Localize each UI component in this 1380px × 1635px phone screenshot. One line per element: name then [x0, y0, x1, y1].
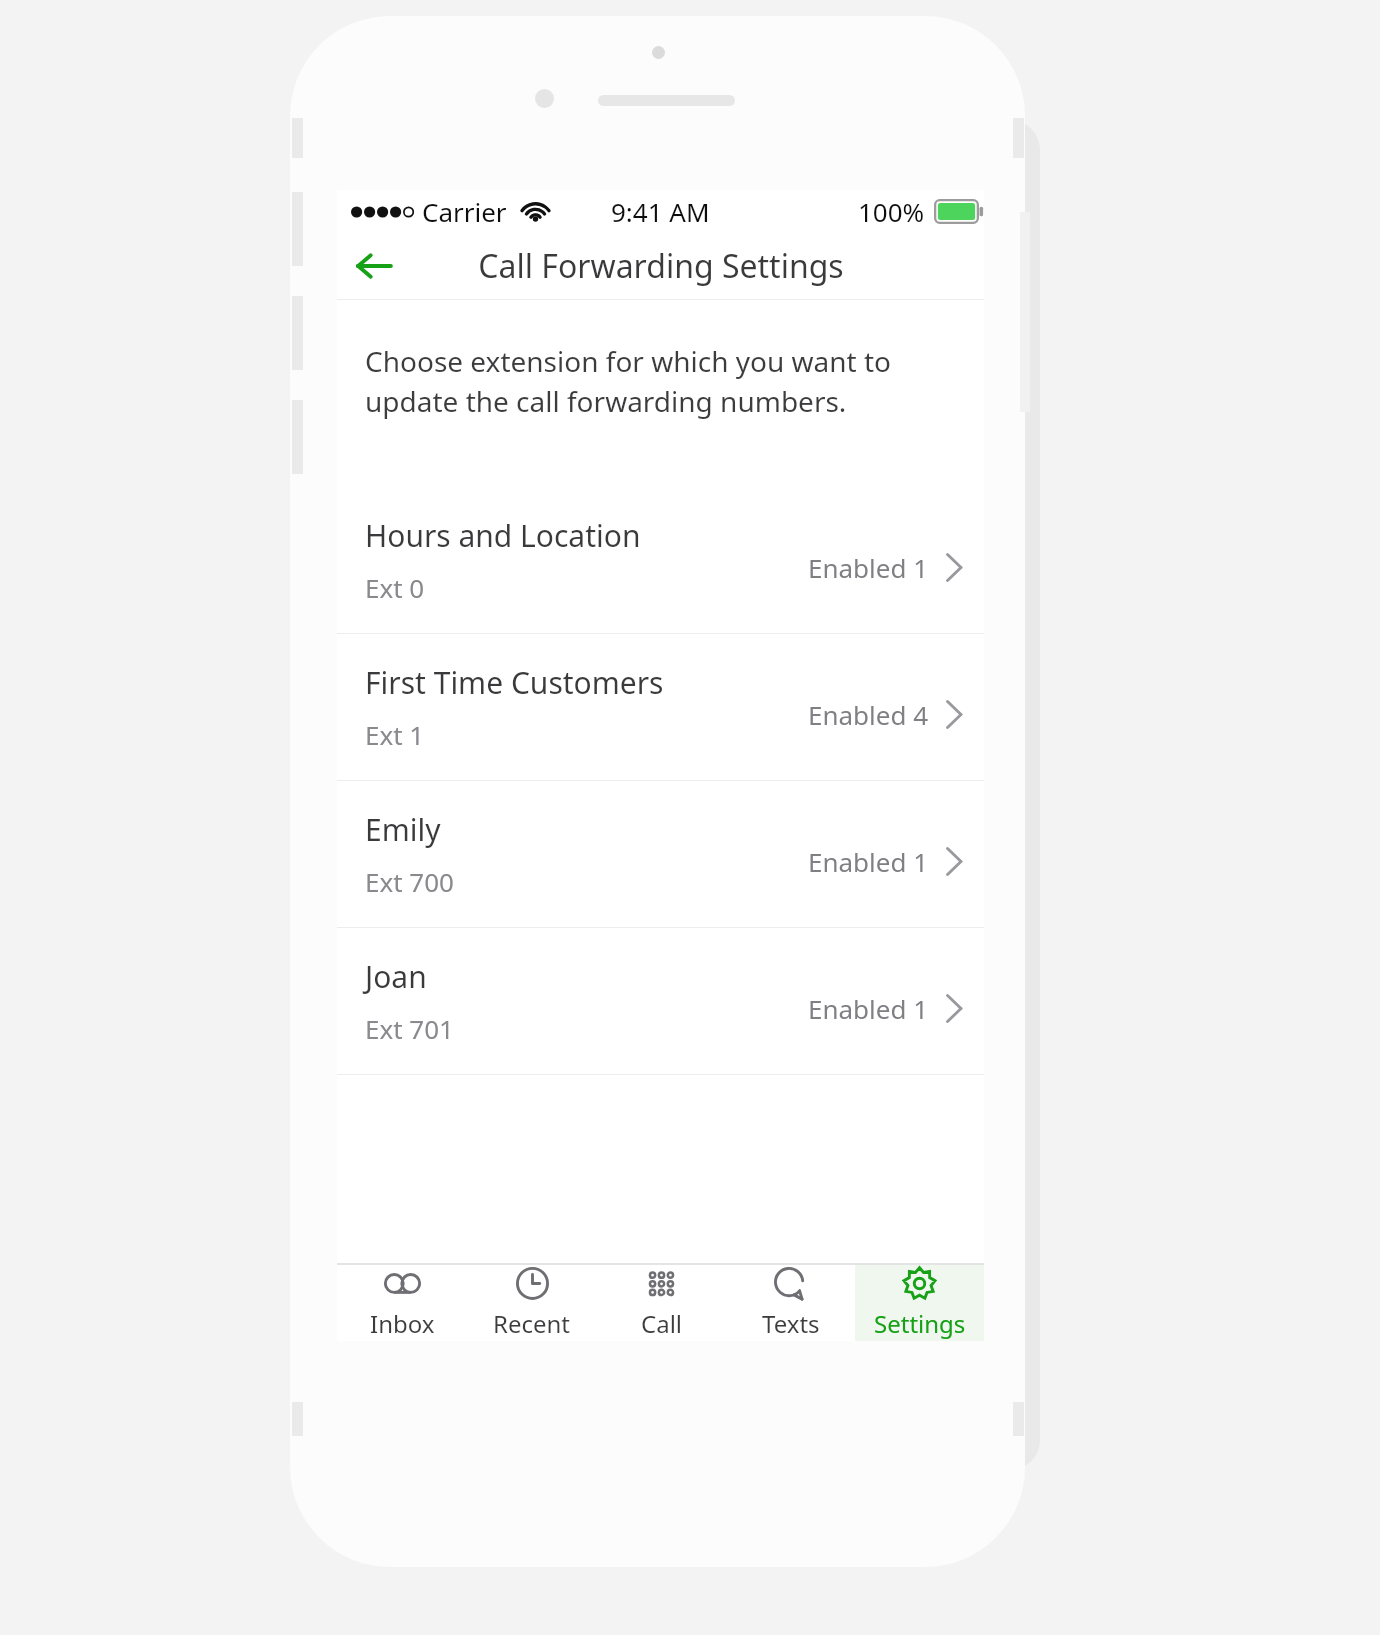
staticText: 100%	[858, 194, 925, 229]
staticText: Joan	[365, 956, 427, 997]
button[interactable]: Call	[597, 1265, 726, 1341]
staticText: Enabled 4	[808, 697, 929, 732]
staticText: Emily	[365, 809, 441, 850]
button[interactable]: First Time Customers	[337, 634, 984, 780]
button[interactable]: Hours and Location	[337, 487, 984, 633]
staticText: Settings	[874, 1307, 966, 1340]
button[interactable]: Inbox	[337, 1265, 467, 1341]
staticText: Choose extension for which you want to u…	[365, 342, 892, 421]
staticText: Recent	[493, 1307, 571, 1340]
staticText: Hours and Location	[365, 515, 641, 556]
staticText: Call	[641, 1307, 683, 1340]
button[interactable]: Joan	[337, 928, 984, 1074]
staticText: Enabled 1	[808, 844, 929, 879]
staticText: Carrier	[422, 194, 507, 229]
staticText: Ext 0	[365, 570, 425, 605]
staticText: Ext 701	[365, 1011, 454, 1046]
staticText: Ext 1	[365, 717, 425, 752]
staticText: 9:41 AM	[611, 194, 710, 229]
button[interactable]: Emily	[337, 781, 984, 927]
staticText: Enabled 1	[808, 991, 929, 1026]
staticText: Ext 700	[365, 864, 454, 899]
staticText: Texts	[762, 1307, 820, 1340]
staticText: Enabled 1	[808, 550, 929, 585]
staticText: Call Forwarding Settings	[478, 244, 844, 288]
button[interactable]: Back	[345, 237, 403, 295]
button[interactable]: Settings	[855, 1265, 984, 1341]
button[interactable]: Texts	[726, 1265, 855, 1341]
button[interactable]: Recent	[467, 1265, 597, 1341]
staticText: First Time Customers	[365, 662, 664, 703]
staticText: Inbox	[370, 1307, 435, 1340]
